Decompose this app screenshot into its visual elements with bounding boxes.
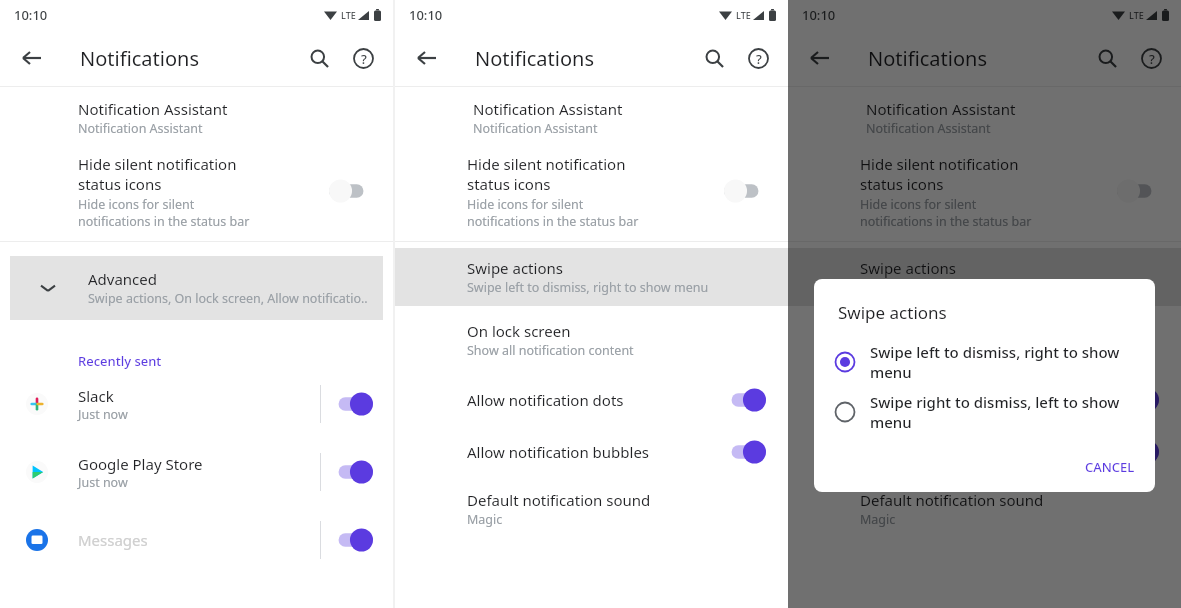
button[interactable]: Allow notification bubbles (788, 426, 1181, 478)
staticText: Notification Assistant (473, 120, 598, 137)
staticText: 10:10 (802, 6, 836, 24)
button[interactable] (331, 392, 373, 416)
staticText: LTE (1129, 9, 1144, 21)
button[interactable]: Search (692, 36, 736, 80)
staticText: On lock screen (860, 321, 964, 341)
staticText: LTE (736, 9, 751, 21)
button[interactable]: Notification Assistant (395, 87, 788, 149)
staticText: Hide silent notification status icons (78, 154, 261, 194)
button[interactable]: Allow notification dots (788, 374, 1181, 426)
staticText: CANCEL (1085, 458, 1135, 476)
staticText: Magic (467, 511, 503, 528)
button[interactable]: Help (736, 36, 780, 80)
button[interactable]: Slack (0, 370, 393, 438)
staticText: Swipe left to dismiss, right to show men… (467, 279, 709, 296)
staticText: Slack (78, 386, 114, 406)
staticText: Notifications (868, 45, 987, 72)
staticText: Hide icons for silent notifications in t… (467, 196, 653, 229)
button[interactable]: Help (1129, 36, 1173, 80)
button[interactable]: Swipe right to dismiss, left to show men… (814, 388, 1155, 438)
button[interactable]: Back (405, 36, 449, 80)
staticText: Notification Assistant (866, 120, 991, 137)
button[interactable] (724, 179, 766, 203)
button[interactable] (1117, 440, 1159, 464)
staticText: Notification Assistant (866, 99, 1016, 119)
staticText: Just now (78, 474, 128, 491)
staticText: Allow notification dots (467, 390, 624, 410)
staticText: Swipe actions (467, 258, 563, 278)
staticText: Swipe actions, On lock screen, Allow not… (88, 290, 368, 307)
staticText: Swipe right to dismiss, left to show men… (870, 392, 1135, 432)
button[interactable] (1117, 388, 1159, 412)
staticText: 10:10 (409, 6, 443, 24)
staticText: Show all notification content (467, 342, 634, 359)
button[interactable]: Back (798, 36, 842, 80)
button[interactable]: Google Play Store (0, 438, 393, 506)
staticText: 10:10 (14, 6, 48, 24)
staticText: Notifications (475, 45, 594, 72)
staticText: Hide silent notification status icons (860, 154, 1046, 194)
button[interactable] (329, 179, 371, 203)
staticText: On lock screen (467, 321, 571, 341)
button[interactable]: Swipe actions (788, 248, 1181, 306)
staticText: Default notification sound (467, 490, 651, 510)
staticText: Hide icons for silent notifications in t… (78, 196, 261, 229)
button[interactable]: Messages (0, 506, 393, 574)
button[interactable]: CANCEL (1065, 450, 1155, 484)
button[interactable] (331, 460, 373, 484)
staticText: Recently sent (78, 352, 162, 370)
button[interactable]: Advanced (10, 256, 383, 320)
button[interactable]: Allow notification dots (395, 374, 788, 426)
staticText: Google Play Store (78, 454, 203, 474)
staticText: Swipe actions (838, 301, 947, 324)
button[interactable]: Default notification sound (788, 478, 1181, 540)
button[interactable]: Swipe left to dismiss, right to show men… (814, 338, 1155, 388)
staticText: Advanced (88, 269, 158, 289)
staticText: ? (1149, 50, 1155, 68)
staticText: Notification Assistant (78, 120, 203, 137)
staticText: Hide silent notification status icons (467, 154, 653, 194)
button[interactable]: Swipe actions (395, 248, 788, 306)
button[interactable]: Back (10, 36, 54, 80)
button[interactable]: On lock screen (788, 306, 1181, 374)
staticText: Allow notification bubbles (467, 442, 650, 462)
staticText: Magic (860, 511, 896, 528)
button[interactable] (1117, 179, 1159, 203)
staticText: Messages (78, 530, 148, 550)
button[interactable]: Help (341, 36, 385, 80)
button[interactable] (331, 528, 373, 552)
staticText: Show all notification content (860, 342, 1027, 359)
staticText: Notification Assistant (473, 99, 623, 119)
button[interactable]: Notification Assistant (788, 87, 1181, 149)
staticText: LTE (341, 9, 356, 21)
button[interactable]: Search (1085, 36, 1129, 80)
staticText: Notification Assistant (78, 99, 228, 119)
staticText: ? (361, 50, 367, 68)
staticText: Just now (78, 406, 128, 423)
staticText: Default notification sound (860, 490, 1044, 510)
staticText: Swipe actions (860, 258, 956, 278)
button[interactable]: Notification Assistant (0, 87, 393, 149)
staticText: Swipe left to dismiss, right to show men… (870, 342, 1135, 382)
staticText: ? (756, 50, 762, 68)
button[interactable]: Default notification sound (395, 478, 788, 540)
staticText: Allow notification dots (860, 390, 1017, 410)
button[interactable]: Allow notification bubbles (395, 426, 788, 478)
staticText: Notifications (80, 45, 199, 72)
staticText: Hide icons for silent notifications in t… (860, 196, 1046, 229)
button[interactable]: Search (297, 36, 341, 80)
button[interactable]: On lock screen (395, 306, 788, 374)
button[interactable] (724, 440, 766, 464)
button[interactable] (724, 388, 766, 412)
